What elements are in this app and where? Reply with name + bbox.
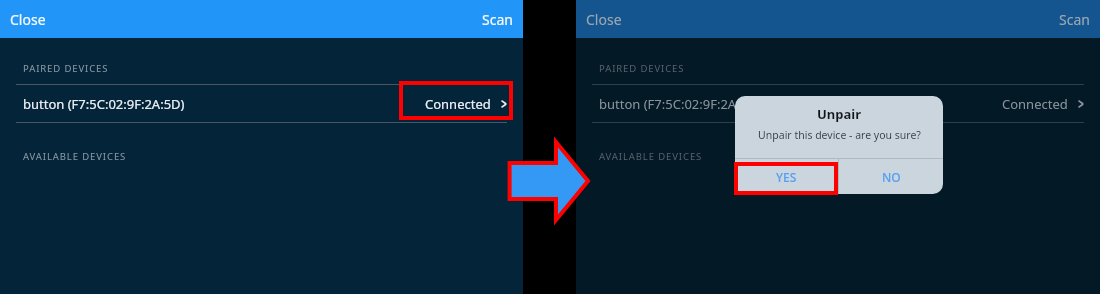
button[interactable]: button (F7:5C:02:9F:2A:5D) [0, 85, 523, 122]
staticText: button (F7:5C:02:9F:2A:5D) [599, 95, 1002, 113]
button[interactable]: YES [735, 159, 838, 194]
button[interactable]: Scan [1049, 4, 1100, 35]
staticText: PAIRED DEVICES [599, 62, 685, 75]
staticText: Unpair this device - are you sure? [758, 128, 921, 142]
staticText: Scan [1059, 10, 1090, 29]
staticText: Close [10, 10, 46, 29]
staticText: Close [586, 10, 622, 29]
staticText: button (F7:5C:02:9F:2A:5D) [23, 95, 425, 113]
staticText: AVAILABLE DEVICES [23, 150, 127, 163]
button[interactable]: Close [576, 4, 632, 35]
staticText: Scan [482, 10, 513, 29]
button[interactable]: button (F7:5C:02:9F:2A:5D) [576, 85, 1100, 122]
staticText: Connected [425, 95, 491, 113]
staticText: YES [776, 169, 797, 185]
staticText: Unpair [817, 105, 861, 123]
other: Open [499, 97, 509, 111]
button[interactable]: NO [839, 159, 943, 194]
button[interactable]: Scan [472, 4, 523, 35]
staticText: PAIRED DEVICES [23, 62, 109, 75]
button[interactable]: Close [0, 4, 56, 35]
staticText: NO [882, 169, 901, 185]
staticText: Connected [1002, 95, 1068, 113]
staticText: AVAILABLE DEVICES [599, 150, 703, 163]
other: Open [1076, 97, 1086, 111]
